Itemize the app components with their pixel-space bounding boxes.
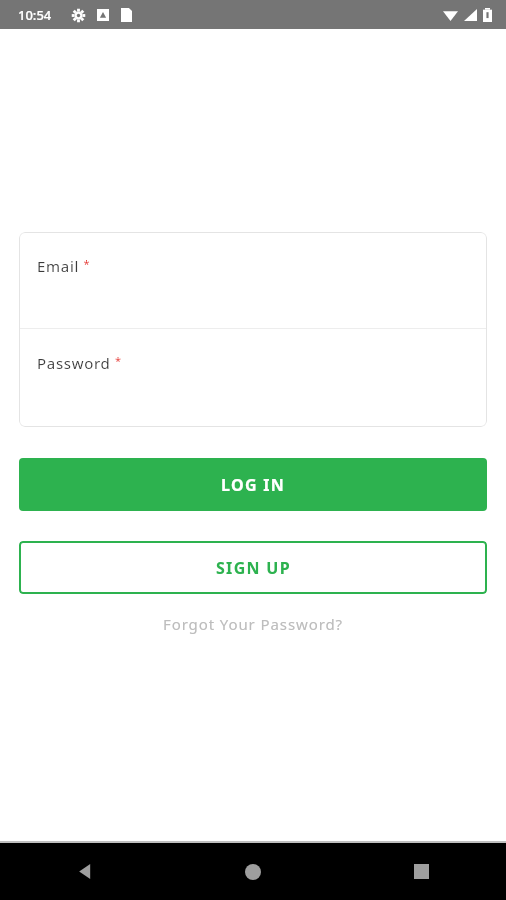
staticText: Password * [37, 353, 122, 373]
button[interactable]: Recent apps [337, 843, 506, 900]
button[interactable]: Email * [19, 232, 487, 328]
staticText: Email * [37, 256, 91, 276]
button[interactable]: Forgot Your Password? [0, 614, 506, 634]
staticText: LOG IN [221, 474, 286, 496]
staticText: 10:54 [18, 6, 52, 24]
button[interactable]: Password * [19, 329, 487, 427]
staticText: Forgot Your Password? [163, 614, 343, 634]
button[interactable]: Back [0, 843, 168, 900]
button[interactable]: SIGN UP [19, 541, 487, 594]
button[interactable]: LOG IN [19, 458, 487, 511]
staticText: SIGN UP [216, 557, 291, 579]
button[interactable]: Home [168, 843, 337, 900]
